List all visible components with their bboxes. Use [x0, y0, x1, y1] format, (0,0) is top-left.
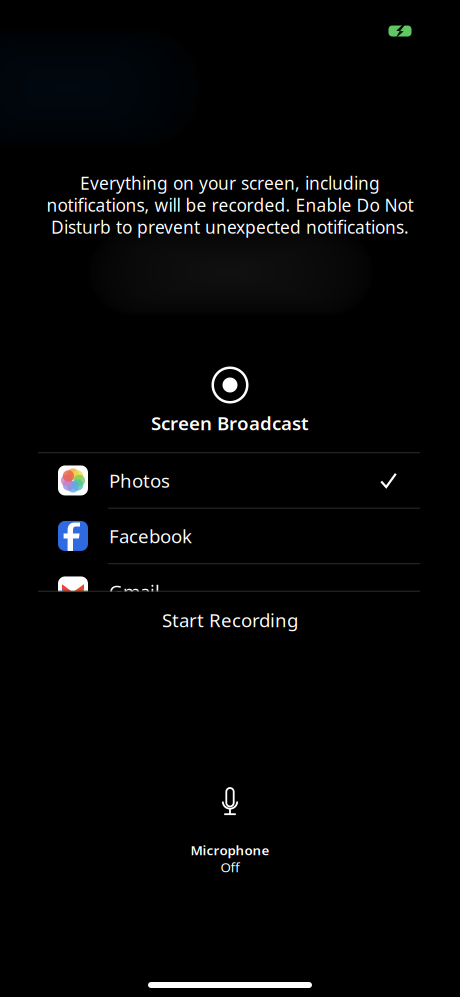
- staticText: Off: [220, 858, 239, 876]
- staticText: Everything on your screen, including: [80, 171, 380, 194]
- button[interactable]: Facebook: [38, 509, 420, 563]
- staticText: Facebook: [109, 524, 192, 548]
- button[interactable]: Start Recording: [80, 598, 380, 642]
- button[interactable]: Microphone: [175, 787, 285, 883]
- staticText: Screen Broadcast: [151, 411, 309, 435]
- button[interactable]: Gmail: [38, 564, 420, 619]
- staticText: Gmail: [109, 579, 160, 604]
- staticText: notifications, will be recorded. Enable …: [46, 193, 413, 216]
- staticText: Microphone: [190, 841, 269, 859]
- staticText: Photos: [109, 468, 170, 493]
- staticText: Disturb to prevent unexpected notificati…: [51, 215, 409, 238]
- staticText: Start Recording: [162, 608, 298, 632]
- button[interactable]: Photos: [38, 453, 420, 508]
